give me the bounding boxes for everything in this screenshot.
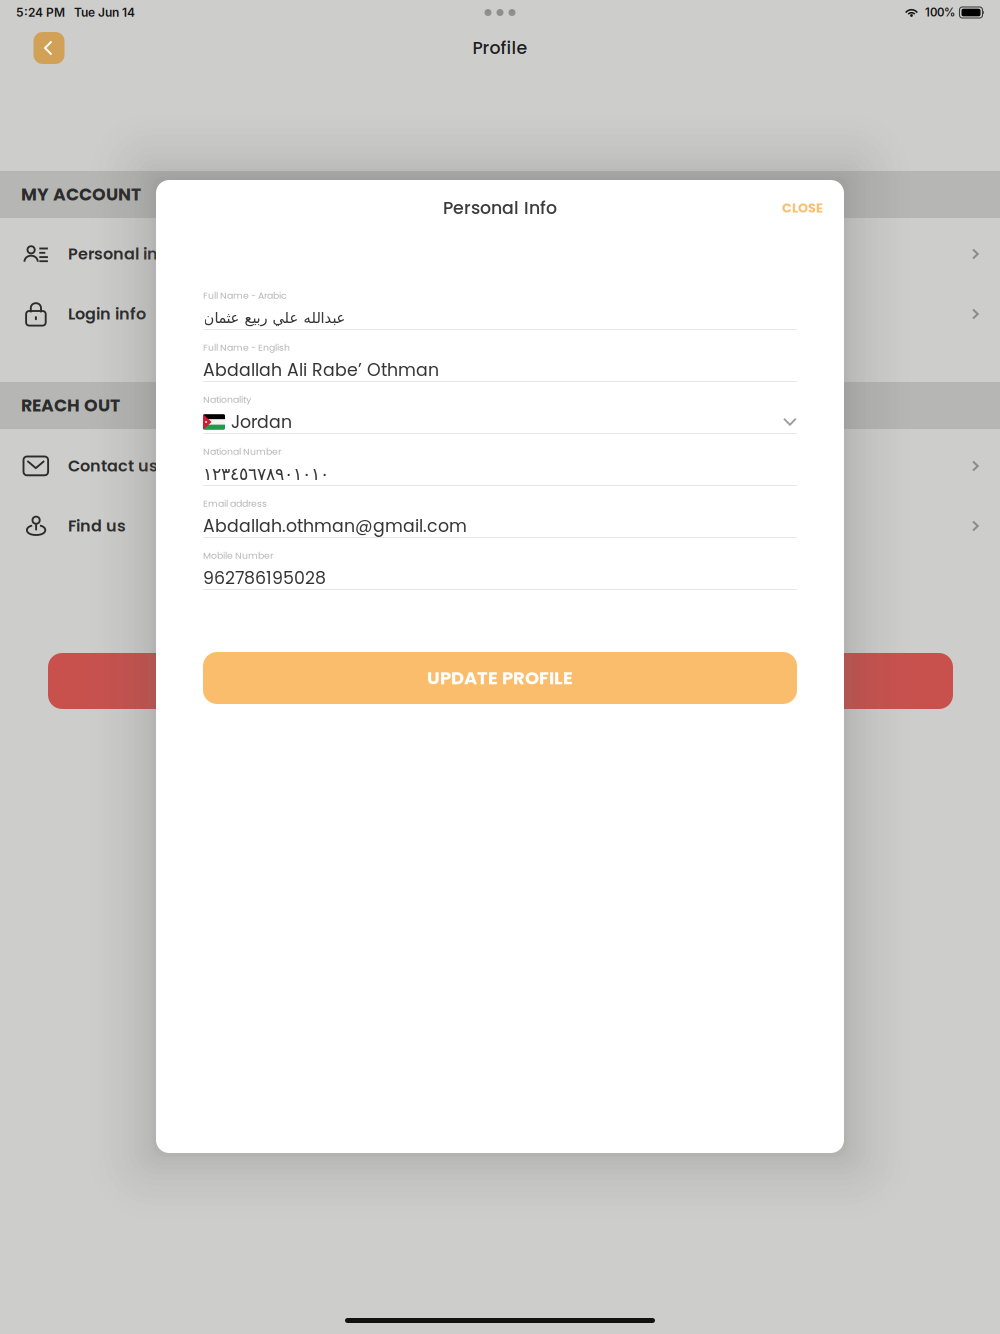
button[interactable]: CLOSE — [768, 189, 837, 227]
staticText: 5:24 PM — [16, 5, 65, 20]
staticText: ١٢٣٤٥٦٧٨٩٠١٠١٠ — [203, 464, 329, 484]
staticText: Profile — [472, 36, 527, 60]
staticText: Find us — [68, 515, 126, 537]
staticText: Personal info — [68, 243, 174, 265]
staticText: Mobile Number — [203, 549, 273, 562]
staticText: Jordan — [231, 410, 292, 434]
staticText: 100% — [925, 6, 955, 19]
staticText: National Number — [203, 445, 281, 458]
button[interactable]: Back — [27, 26, 71, 70]
staticText: Tue Jun 14 — [74, 5, 135, 20]
staticText: Abdallah.othman@gmail.com — [203, 514, 467, 538]
button[interactable]: Login info — [0, 284, 1000, 344]
staticText: REACH OUT — [21, 393, 120, 418]
button[interactable]: Find us — [0, 496, 1000, 556]
staticText: Email address — [203, 497, 267, 510]
staticText: 962786195028 — [203, 566, 326, 590]
staticText: Personal Info — [443, 196, 557, 220]
staticText: MY ACCOUNT — [21, 182, 141, 207]
staticText: Nationality — [203, 393, 251, 406]
button[interactable]: Personal info — [0, 224, 1000, 284]
button[interactable] — [0, 653, 1000, 709]
staticText: Full Name - English — [203, 341, 290, 354]
staticText: عبدالله علي ربيع عثمان — [203, 309, 345, 327]
staticText: Abdallah Ali Rabe’ Othman — [203, 358, 439, 382]
staticText: Contact us — [68, 455, 158, 477]
button[interactable]: Contact us — [0, 436, 1000, 496]
staticText: CLOSE — [782, 199, 823, 217]
staticText: Login info — [68, 303, 146, 325]
staticText: Full Name - Arabic — [203, 289, 287, 302]
button[interactable]: UPDATE PROFILE — [156, 652, 844, 704]
staticText: UPDATE PROFILE — [427, 665, 573, 691]
